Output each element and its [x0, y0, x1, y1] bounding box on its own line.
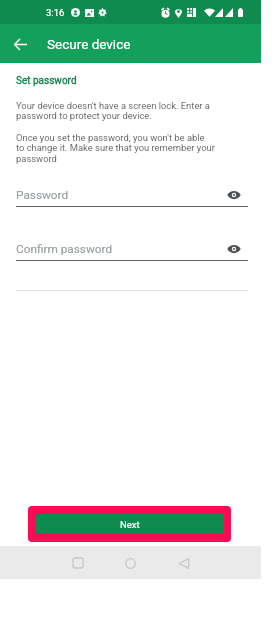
staticText: Confirm password: [16, 242, 113, 256]
staticText: Secure device: [47, 36, 131, 52]
staticText: Once you set the password, you won't be …: [16, 132, 215, 165]
button[interactable]: Home: [116, 549, 144, 577]
button[interactable]: Back: [170, 549, 198, 577]
staticText: Next: [120, 519, 140, 530]
button[interactable]: Toggle password visibility: [224, 185, 244, 205]
staticText: Set password: [16, 75, 77, 87]
button[interactable]: Next: [28, 506, 231, 542]
button[interactable]: Recent apps: [64, 549, 92, 577]
staticText: Password: [16, 188, 69, 202]
staticText: Your device doesn't have a screen lock. …: [16, 100, 210, 122]
button[interactable]: Navigate up: [8, 32, 32, 56]
staticText: 3:16: [46, 7, 65, 18]
button[interactable]: Toggle password visibility: [224, 239, 244, 259]
